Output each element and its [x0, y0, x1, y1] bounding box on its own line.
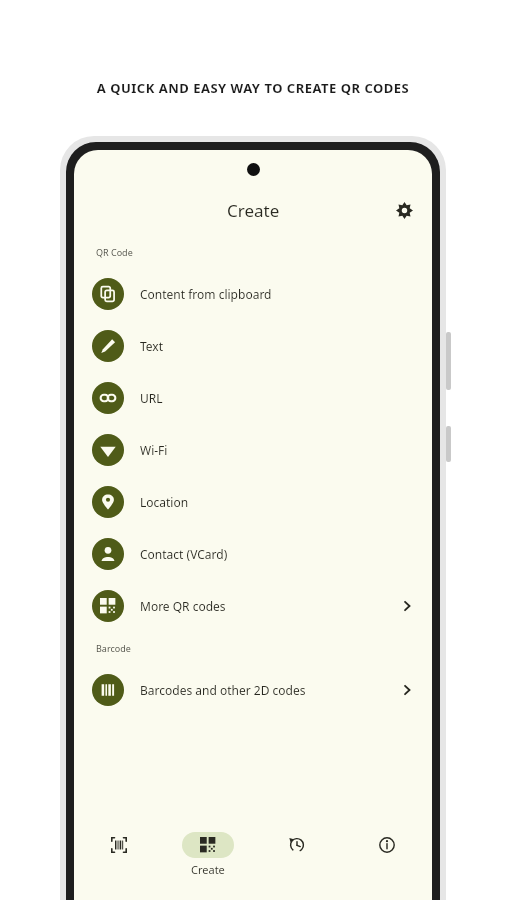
button[interactable]: Content from clipboard [74, 268, 432, 320]
button[interactable]: Scan [74, 826, 163, 890]
staticText: Barcode [96, 642, 131, 654]
button[interactable]: More QR codes [74, 580, 432, 632]
staticText: A QUICK AND EASY WAY TO CREATE QR CODES [0, 79, 506, 97]
staticText: QR Code [96, 246, 133, 258]
staticText: Create [191, 862, 225, 877]
staticText: Content from clipboard [140, 286, 414, 302]
button[interactable]: Wi-Fi [74, 424, 432, 476]
button[interactable]: Info [342, 826, 432, 890]
button[interactable]: History [252, 826, 342, 890]
button[interactable]: URL [74, 372, 432, 424]
button[interactable]: Create [163, 826, 252, 890]
button[interactable]: Contact (VCard) [74, 528, 432, 580]
staticText: Barcodes and other 2D codes [140, 682, 400, 698]
staticText: Create [227, 199, 280, 222]
staticText: Contact (VCard) [140, 546, 414, 562]
staticText: URL [140, 390, 414, 406]
button[interactable]: Location [74, 476, 432, 528]
button[interactable]: Barcodes and other 2D codes [74, 664, 432, 716]
button[interactable]: Text [74, 320, 432, 372]
button[interactable]: Settings [386, 192, 422, 228]
staticText: Location [140, 494, 414, 510]
staticText: Text [140, 338, 414, 354]
staticText: Wi-Fi [140, 442, 414, 458]
staticText: More QR codes [140, 598, 400, 614]
